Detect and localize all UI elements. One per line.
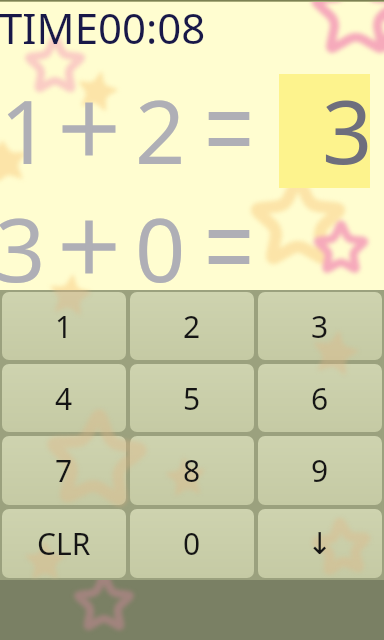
button[interactable]: 9 [258, 436, 382, 505]
button[interactable]: Backspace [258, 509, 382, 578]
staticText: 9 [311, 450, 329, 491]
button[interactable]: 8 [130, 436, 254, 505]
staticText: 5 [183, 378, 201, 419]
staticText: 0 [135, 188, 186, 302]
button[interactable]: CLR [2, 509, 126, 578]
staticText: 2 [183, 306, 201, 347]
staticText: 0 [183, 523, 201, 564]
button[interactable]: 0 [130, 509, 254, 578]
staticText: 6 [311, 378, 329, 419]
staticText: 4 [55, 378, 73, 419]
button[interactable]: 6 [258, 364, 382, 432]
button[interactable]: 5 [130, 364, 254, 432]
staticText: 3 [0, 188, 46, 302]
staticText: TIME00:08 [0, 0, 206, 56]
button[interactable]: 4 [2, 364, 126, 432]
staticText: 3 [322, 70, 373, 184]
staticText: 1 [55, 306, 73, 347]
button[interactable]: 1 [2, 292, 126, 360]
staticText: CLR [37, 523, 91, 564]
staticText: 8 [183, 450, 201, 491]
staticText: ↓ [307, 526, 333, 561]
staticText: 3 [311, 306, 329, 347]
staticText: 7 [55, 450, 73, 491]
staticText: 1 [0, 70, 51, 184]
button[interactable]: 3 [258, 292, 382, 360]
staticText: 2 [135, 70, 186, 184]
button[interactable]: 7 [2, 436, 126, 505]
button[interactable]: 2 [130, 292, 254, 360]
